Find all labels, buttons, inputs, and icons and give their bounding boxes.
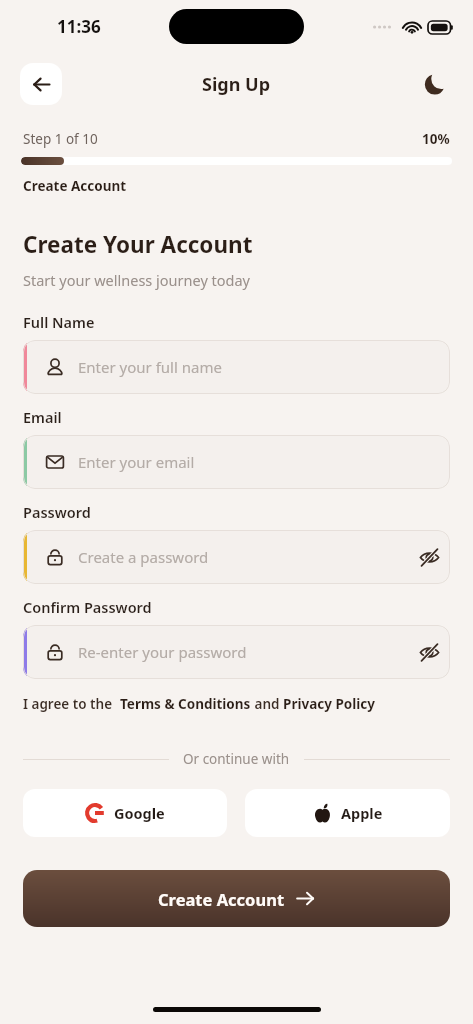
staticText: Google — [114, 803, 165, 823]
button[interactable]: I agree to the — [23, 695, 473, 713]
staticText: Create Account — [158, 888, 285, 910]
button[interactable]: Re-enter your password — [23, 625, 450, 679]
staticText: Sign Up — [202, 72, 271, 97]
staticText: Email — [23, 407, 62, 427]
button[interactable]: Apple — [245, 789, 450, 837]
staticText: Create Account — [23, 177, 127, 195]
staticText: 10% — [422, 130, 450, 148]
staticText: Password — [23, 502, 91, 522]
staticText: Or continue with — [183, 750, 290, 768]
staticText: Re-enter your password — [78, 642, 408, 662]
staticText: Step 1 of 10 — [23, 130, 98, 148]
staticText: Privacy Policy — [283, 695, 375, 713]
staticText: Enter your email — [78, 452, 436, 472]
button[interactable]: Enter your full name — [23, 340, 450, 394]
staticText: 11:36 — [57, 15, 101, 38]
staticText: Full Name — [23, 312, 95, 332]
button[interactable]: Show password — [408, 536, 450, 578]
staticText: and — [251, 695, 283, 713]
staticText: Create a password — [78, 547, 408, 567]
staticText: I agree to the — [23, 695, 116, 713]
button[interactable]: Google — [23, 789, 227, 837]
staticText: Confirm Password — [23, 597, 152, 617]
button[interactable]: Dark mode — [417, 67, 451, 101]
button[interactable]: Back — [20, 63, 62, 105]
staticText: Apple — [341, 803, 383, 823]
staticText: Start your wellness journey today — [23, 270, 250, 290]
button[interactable]: Enter your email — [23, 435, 450, 489]
button[interactable]: Create a password — [23, 530, 450, 584]
staticText: Enter your full name — [78, 357, 436, 377]
button[interactable]: Create Account — [23, 870, 450, 927]
button[interactable]: Show password — [408, 631, 450, 673]
staticText: Terms & Conditions — [120, 695, 251, 713]
staticText: Create Your Account — [23, 229, 253, 260]
